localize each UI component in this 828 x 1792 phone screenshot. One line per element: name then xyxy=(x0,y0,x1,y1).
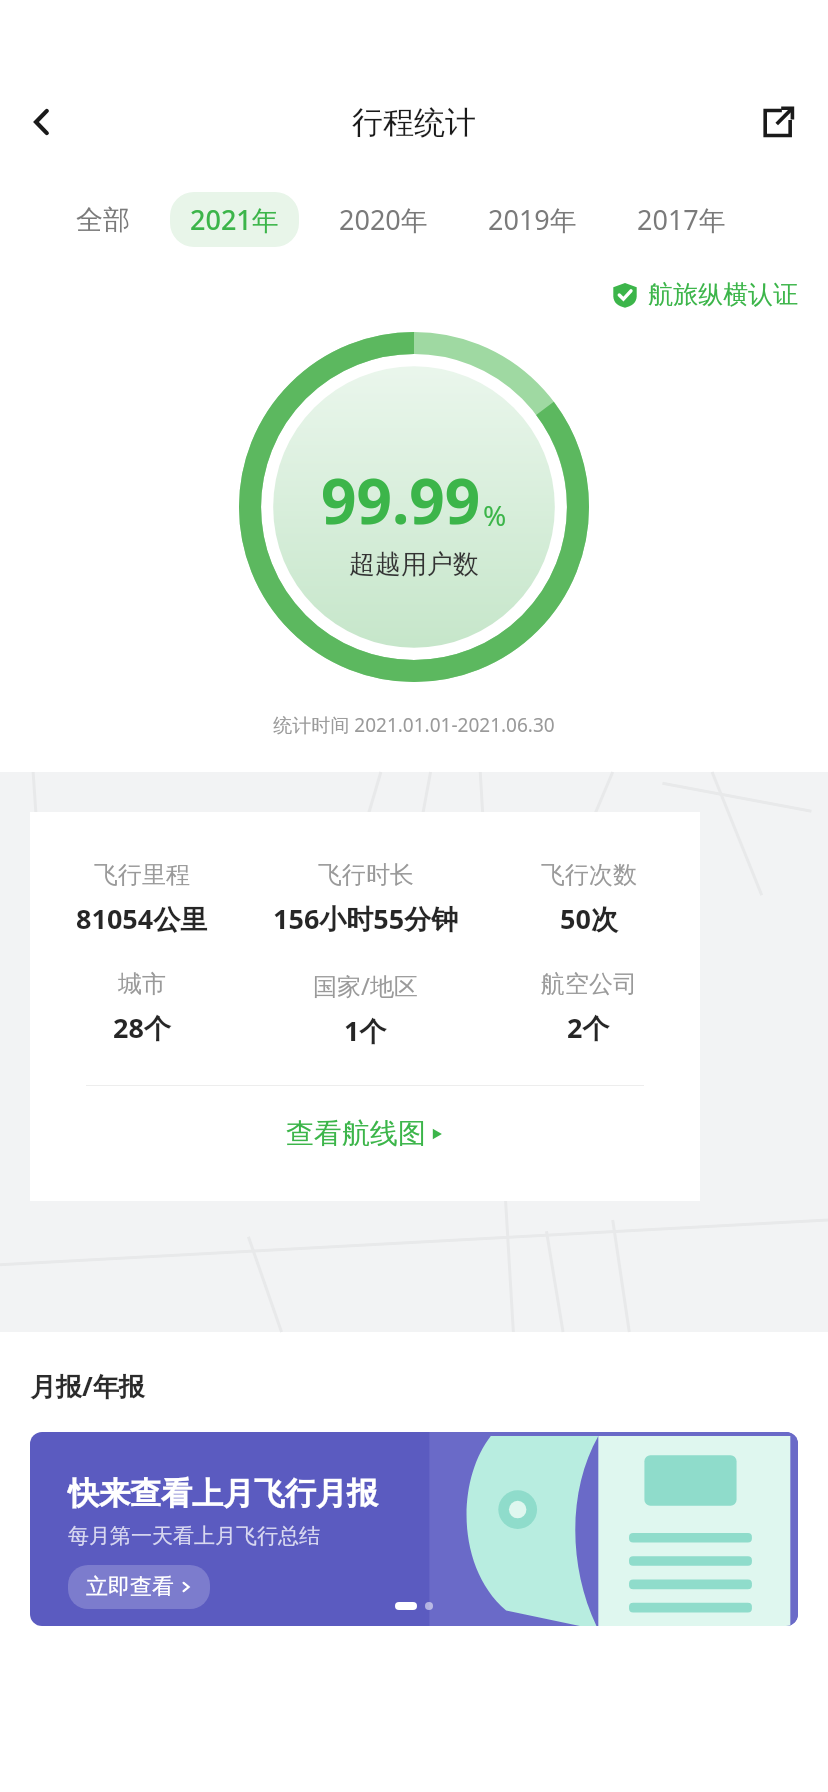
button[interactable]: Share xyxy=(750,94,806,150)
staticText: 月报/年报 xyxy=(30,1368,145,1404)
button[interactable]: 立即查看 xyxy=(68,1565,210,1609)
staticText: 全部 xyxy=(76,203,130,237)
staticText: 2019年 xyxy=(488,201,577,238)
staticText: 城市 xyxy=(118,969,166,999)
staticText: 50次 xyxy=(560,900,618,937)
staticText: 查看航线图 xyxy=(286,1116,426,1151)
staticText: % xyxy=(483,496,507,534)
staticText: 国家/地区 xyxy=(313,969,418,1002)
staticText: 航空公司 xyxy=(541,969,637,999)
staticText: 99.99 xyxy=(321,458,481,542)
staticText: 航旅纵横认证 xyxy=(648,279,798,310)
staticText: 飞行里程 xyxy=(94,860,190,890)
staticText: 每月第一天看上月飞行总结 xyxy=(68,1523,320,1549)
staticText: 2020年 xyxy=(339,201,428,238)
staticText: 156小时55分钟 xyxy=(273,900,459,937)
staticText: 2个 xyxy=(567,1009,610,1046)
staticText: 行程统计 xyxy=(352,103,476,142)
button[interactable]: 全部 xyxy=(56,194,150,246)
button[interactable]: 2020年 xyxy=(319,192,448,247)
staticText: 飞行次数 xyxy=(541,860,637,890)
staticText: 81054公里 xyxy=(76,900,208,937)
staticText: 超越用户数 xyxy=(349,548,479,581)
staticText: 28个 xyxy=(113,1009,171,1046)
staticText: 快来查看上月飞行月报 xyxy=(68,1474,378,1513)
button[interactable]: 2021年 xyxy=(170,192,299,247)
button[interactable]: 快来查看上月飞行月报 xyxy=(30,1432,798,1626)
staticText: 1个 xyxy=(344,1012,387,1049)
staticText: 2017年 xyxy=(637,201,726,238)
staticText: 立即查看 xyxy=(86,1573,174,1601)
button[interactable]: 2019年 xyxy=(468,192,597,247)
staticText: 统计时间 2021.01.01-2021.06.30 xyxy=(0,712,828,738)
button[interactable]: 2017年 xyxy=(617,192,746,247)
staticText: 2021年 xyxy=(190,201,279,238)
button[interactable]: 查看航线图 xyxy=(30,1086,700,1181)
button[interactable]: Back xyxy=(14,94,70,150)
staticText: 飞行时长 xyxy=(318,860,414,890)
